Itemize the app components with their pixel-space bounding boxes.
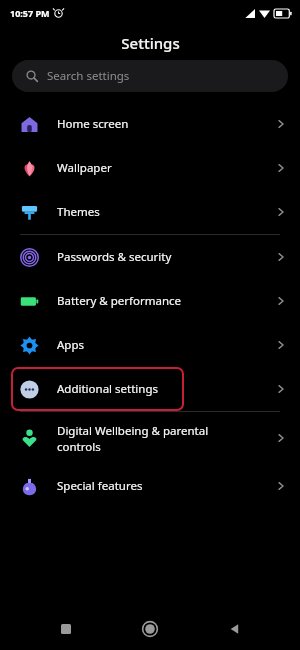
button[interactable]: Digital Wellbeing & parental controls bbox=[0, 412, 300, 464]
button[interactable]: Wallpaper bbox=[0, 146, 300, 190]
button[interactable]: Home bbox=[132, 611, 168, 647]
button[interactable]: Passwords & security bbox=[0, 235, 300, 279]
staticText: Settings bbox=[121, 33, 180, 53]
button[interactable]: Search settings bbox=[12, 60, 288, 92]
staticText: Wallpaper bbox=[57, 160, 274, 176]
staticText: 10:57 PM bbox=[10, 7, 50, 19]
button[interactable]: Home screen bbox=[0, 102, 300, 146]
button[interactable]: Additional settings bbox=[0, 367, 300, 411]
button[interactable]: Special features bbox=[0, 464, 300, 508]
button[interactable]: Themes bbox=[0, 190, 300, 234]
staticText: Battery & performance bbox=[57, 293, 274, 309]
button[interactable]: Battery & performance bbox=[0, 279, 300, 323]
staticText: Home screen bbox=[57, 116, 274, 132]
button[interactable]: Back bbox=[216, 611, 252, 647]
staticText: Search settings bbox=[47, 68, 130, 84]
staticText: Additional settings bbox=[57, 381, 274, 397]
staticText: Themes bbox=[57, 204, 274, 220]
staticText: Passwords & security bbox=[57, 249, 274, 265]
staticText: Special features bbox=[57, 478, 274, 494]
button[interactable]: Apps bbox=[0, 323, 300, 367]
staticText: Digital Wellbeing & parental controls bbox=[57, 423, 274, 454]
staticText: Apps bbox=[57, 337, 274, 353]
button[interactable]: Recent apps bbox=[48, 611, 84, 647]
